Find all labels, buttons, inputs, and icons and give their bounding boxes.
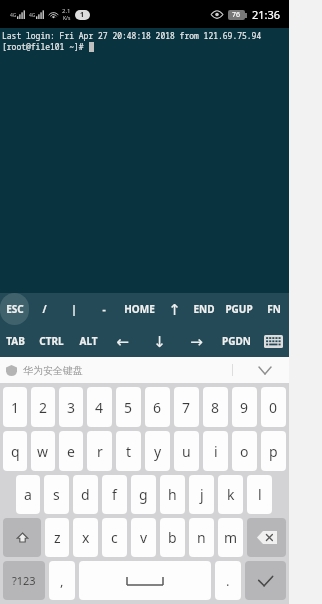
- staticText: TAB: [6, 334, 25, 348]
- button[interactable]: 0: [261, 387, 286, 427]
- button[interactable]: p: [261, 431, 286, 471]
- staticText: .: [226, 572, 230, 590]
- staticText: FN: [267, 302, 281, 316]
- button[interactable]: ALT: [72, 325, 104, 357]
- staticText: ←: [116, 333, 129, 350]
- staticText: y: [154, 442, 162, 461]
- button[interactable]: ←: [104, 325, 141, 357]
- button[interactable]: 6: [145, 387, 170, 427]
- staticText: /: [42, 302, 47, 316]
- button[interactable]: c: [102, 518, 127, 557]
- staticText: PGDN: [222, 334, 251, 348]
- staticText: p: [269, 442, 278, 461]
- button[interactable]: l: [247, 475, 272, 514]
- button[interactable]: w: [31, 431, 55, 471]
- button[interactable]: →: [178, 325, 215, 357]
- staticText: t: [126, 442, 132, 461]
- button[interactable]: .: [215, 561, 241, 600]
- staticText: s: [53, 485, 60, 504]
- staticText: 3: [67, 398, 76, 417]
- button[interactable]: Backspace: [247, 518, 286, 557]
- staticText: 76: [232, 10, 241, 20]
- button[interactable]: g: [131, 475, 156, 514]
- staticText: ↑: [168, 301, 181, 318]
- button[interactable]: s: [44, 475, 69, 514]
- button[interactable]: y: [145, 431, 170, 471]
- staticText: z: [54, 528, 61, 547]
- button[interactable]: f: [102, 475, 127, 514]
- staticText: CTRL: [39, 334, 64, 348]
- button[interactable]: 5: [116, 387, 141, 427]
- button[interactable]: ,: [49, 561, 75, 600]
- button[interactable]: e: [59, 431, 83, 471]
- button[interactable]: t: [116, 431, 141, 471]
- button[interactable]: v: [131, 518, 156, 557]
- staticText: o: [240, 442, 249, 461]
- staticText: a: [24, 485, 32, 504]
- button[interactable]: ?123: [3, 561, 45, 600]
- button[interactable]: END: [189, 293, 219, 325]
- staticText: 6: [153, 398, 162, 417]
- staticText: v: [140, 528, 148, 547]
- button[interactable]: ↑: [159, 293, 189, 325]
- button[interactable]: /: [29, 293, 59, 325]
- button[interactable]: 7: [174, 387, 199, 427]
- button[interactable]: 2: [31, 387, 55, 427]
- button[interactable]: q: [3, 431, 27, 471]
- button[interactable]: k: [218, 475, 243, 514]
- button[interactable]: TAB: [0, 325, 31, 357]
- button[interactable]: ↓: [141, 325, 178, 357]
- button[interactable]: d: [73, 475, 98, 514]
- button[interactable]: Collapse keyboard: [241, 357, 289, 383]
- button[interactable]: Space: [79, 561, 211, 600]
- staticText: HOME: [124, 302, 155, 316]
- button[interactable]: PGDN: [215, 325, 257, 357]
- button[interactable]: j: [189, 475, 214, 514]
- button[interactable]: i: [203, 431, 228, 471]
- staticText: 华为安全键盘: [23, 364, 83, 377]
- button[interactable]: 4: [87, 387, 112, 427]
- staticText: |: [71, 302, 77, 316]
- button[interactable]: r: [87, 431, 112, 471]
- button[interactable]: h: [160, 475, 185, 514]
- staticText: j: [200, 485, 204, 504]
- button[interactable]: 8: [203, 387, 228, 427]
- button[interactable]: Enter: [245, 561, 286, 600]
- staticText: ESC: [6, 302, 24, 316]
- staticText: ,: [60, 572, 64, 590]
- button[interactable]: |: [59, 293, 89, 325]
- staticText: 9: [240, 398, 249, 417]
- button[interactable]: Shift: [3, 518, 41, 557]
- button[interactable]: z: [45, 518, 69, 557]
- staticText: d: [81, 485, 90, 504]
- staticText: b: [168, 528, 177, 547]
- button[interactable]: n: [189, 518, 214, 557]
- button[interactable]: b: [160, 518, 185, 557]
- staticText: q: [11, 442, 20, 461]
- button[interactable]: -: [89, 293, 119, 325]
- button[interactable]: HOME: [119, 293, 159, 325]
- button[interactable]: 1: [3, 387, 27, 427]
- staticText: 21:36: [252, 7, 281, 22]
- button[interactable]: PGUP: [219, 293, 259, 325]
- button[interactable]: o: [232, 431, 257, 471]
- staticText: g: [139, 485, 148, 504]
- button[interactable]: CTRL: [31, 325, 72, 357]
- button[interactable]: FN: [259, 293, 289, 325]
- staticText: h: [168, 485, 177, 504]
- staticText: K/s: [63, 15, 71, 22]
- button[interactable]: u: [174, 431, 199, 471]
- button[interactable]: 3: [59, 387, 83, 427]
- button[interactable]: ESC: [0, 293, 29, 325]
- staticText: PGUP: [225, 302, 253, 316]
- staticText: l: [258, 485, 262, 504]
- button[interactable]: 9: [232, 387, 257, 427]
- staticText: Last login: Fri Apr 27 20:48:18 2018 fro…: [2, 30, 262, 41]
- button[interactable]: x: [73, 518, 98, 557]
- button[interactable]: Hide keyboard: [257, 325, 289, 357]
- staticText: -: [102, 302, 106, 316]
- button[interactable]: m: [218, 518, 243, 557]
- button[interactable]: a: [16, 475, 40, 514]
- staticText: i: [214, 442, 218, 461]
- staticText: n: [197, 528, 206, 547]
